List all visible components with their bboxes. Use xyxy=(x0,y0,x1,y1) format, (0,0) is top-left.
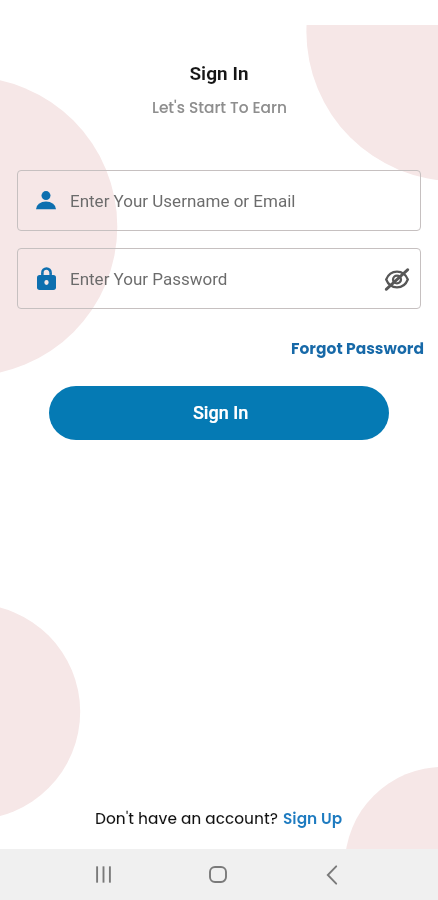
button[interactable]: Enter Your Password xyxy=(17,248,421,309)
staticText: Enter Your Password xyxy=(70,269,228,289)
staticText: Sign In xyxy=(193,402,249,423)
staticText: Forgot Password xyxy=(291,338,424,360)
button[interactable]: Forgot Password xyxy=(287,335,428,363)
button[interactable]: Recents xyxy=(79,849,128,900)
staticText: Let's Start To Earn xyxy=(152,97,287,119)
button[interactable]: Sign Up xyxy=(283,808,343,830)
staticText: Enter Your Username or Email xyxy=(70,191,296,211)
button[interactable]: Back xyxy=(307,849,356,900)
staticText: Sign Up xyxy=(283,808,343,830)
staticText: Don't have an account? xyxy=(95,808,283,830)
button[interactable]: Sign In xyxy=(49,386,389,440)
button[interactable]: Home xyxy=(193,849,242,900)
staticText: Sign In xyxy=(189,62,249,84)
button[interactable]: Show password xyxy=(368,250,426,309)
button[interactable]: Enter Your Username or Email xyxy=(17,170,421,231)
